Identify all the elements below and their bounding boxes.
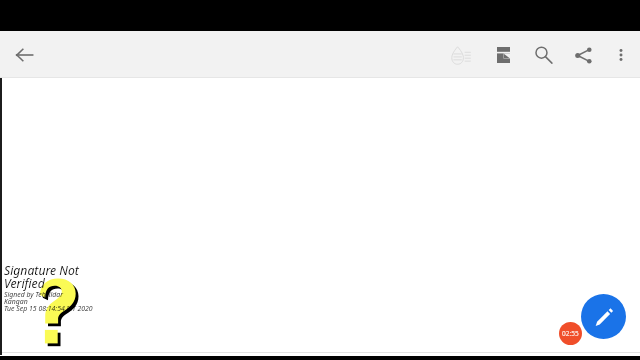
staticText: Signed by Tehsildar Kangan Tue Sep 15 08… xyxy=(4,290,93,313)
button[interactable]: Page layout xyxy=(482,34,524,76)
button[interactable]: Search xyxy=(524,35,564,75)
button[interactable]: More options xyxy=(602,36,640,74)
button[interactable]: Night mode xyxy=(440,34,482,76)
button[interactable]: 02:55 xyxy=(559,322,582,345)
button[interactable]: Back xyxy=(0,31,49,78)
button[interactable]: Share xyxy=(564,36,602,74)
staticText: Signature Not Verified xyxy=(4,262,79,292)
button[interactable]: Edit xyxy=(581,294,626,339)
staticText: 02:55 xyxy=(562,329,579,338)
